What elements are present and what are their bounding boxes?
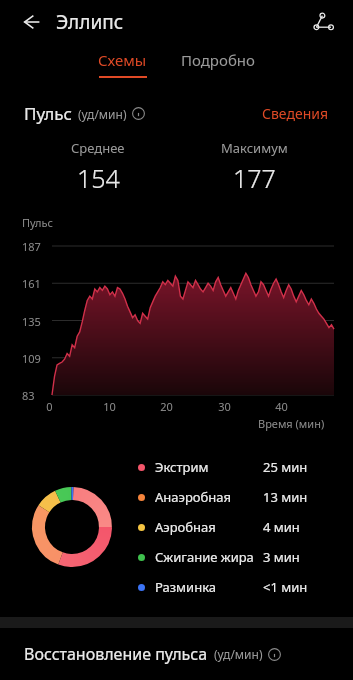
staticText: Среднее — [71, 139, 125, 157]
staticText: 187 — [22, 239, 41, 254]
staticText: <1 мин — [263, 578, 329, 596]
button[interactable]: Back — [14, 5, 48, 39]
button[interactable]: Схемы — [90, 44, 155, 84]
staticText: 40 — [275, 399, 288, 414]
staticText: Восстановление пульса — [24, 643, 208, 665]
staticText: 4 мин — [263, 518, 329, 536]
staticText: 30 — [218, 399, 231, 414]
button[interactable]: Анаэробная — [138, 482, 329, 512]
staticText: Экстрим — [155, 458, 263, 476]
staticText: Подробно — [181, 50, 255, 70]
staticText: Сведения — [262, 104, 329, 123]
button[interactable]: Сведения — [262, 104, 329, 123]
staticText: 20 — [160, 399, 173, 414]
staticText: 135 — [22, 314, 41, 329]
staticText: 161 — [22, 276, 41, 291]
staticText: 13 мин — [263, 488, 329, 506]
staticText: Разминка — [155, 578, 263, 596]
staticText: Пульс — [22, 215, 53, 230]
button[interactable]: Разминка — [138, 572, 329, 602]
button[interactable]: Подробно — [173, 44, 263, 76]
staticText: Аэробная — [155, 518, 263, 536]
staticText: Пульс — [24, 102, 72, 125]
button[interactable]: Экстрим — [138, 452, 329, 482]
staticText: Максимум — [221, 139, 288, 157]
staticText: (уд/мин) — [214, 646, 263, 662]
staticText: 25 мин — [263, 458, 329, 476]
staticText: 10 — [103, 399, 116, 414]
staticText: 177 — [233, 161, 276, 195]
button[interactable]: Share — [307, 5, 341, 39]
staticText: Схемы — [98, 50, 147, 70]
staticText: Эллипс — [56, 9, 124, 35]
staticText: 154 — [77, 161, 120, 195]
staticText: 83 — [22, 388, 35, 403]
staticText: 109 — [22, 351, 41, 366]
staticText: 0 — [46, 399, 53, 414]
button[interactable]: Аэробная — [138, 512, 329, 542]
staticText: (уд/мин) — [78, 106, 127, 122]
staticText: 3 мин — [263, 548, 329, 566]
staticText: Время (мин) — [258, 416, 325, 431]
staticText: Сжигание жира — [155, 548, 263, 566]
staticText: Анаэробная — [155, 488, 263, 506]
button[interactable]: Сжигание жира — [138, 542, 329, 572]
